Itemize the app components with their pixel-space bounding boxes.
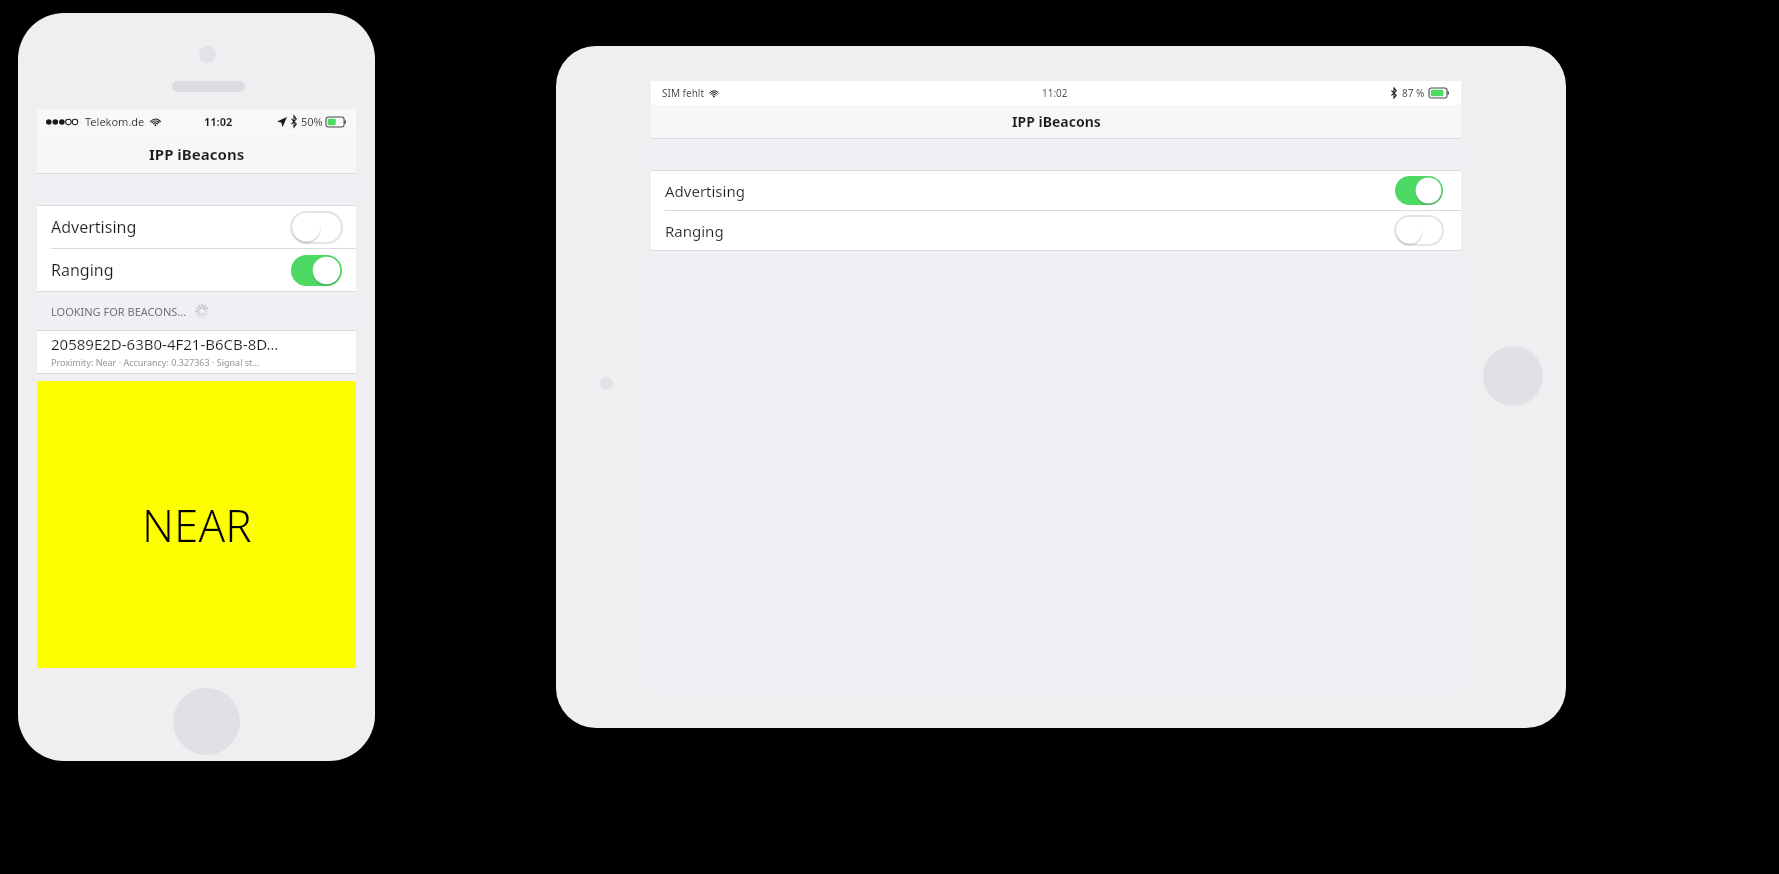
staticText: Advertising — [51, 216, 137, 238]
staticText: Ranging — [51, 259, 114, 281]
staticText: IPP iBeacons — [149, 144, 245, 164]
button[interactable]: On — [1395, 176, 1443, 205]
staticText: 20589E2D-63B0-4F21-B6CB-8D… — [51, 334, 279, 354]
button[interactable]: Off — [1395, 216, 1443, 245]
staticText: Proximity: Near · Accurancy: 0.327363 · … — [51, 356, 260, 368]
staticText: Ranging — [665, 221, 724, 241]
button[interactable]: Advertising — [651, 171, 1461, 210]
staticText: 11:02 — [1042, 86, 1068, 100]
button[interactable]: Ranging — [651, 211, 1461, 250]
staticText: LOOKING FOR BEACONS... — [51, 304, 187, 319]
button[interactable]: Off — [291, 212, 342, 243]
staticText: Telekom.de — [85, 114, 145, 129]
staticText: IPP iBeacons — [1012, 112, 1101, 131]
staticText: NEAR — [142, 495, 252, 555]
button[interactable]: 20589E2D-63B0-4F21-B6CB-8D… — [37, 331, 356, 373]
button[interactable]: Ranging — [37, 249, 356, 291]
staticText: 50% — [301, 114, 323, 129]
button[interactable]: On — [291, 255, 342, 286]
staticText: 11:02 — [204, 114, 233, 129]
staticText: SIM fehlt — [662, 86, 704, 100]
staticText: 87 % — [1402, 86, 1425, 100]
staticText: Advertising — [665, 181, 745, 201]
button[interactable]: Advertising — [37, 206, 356, 248]
